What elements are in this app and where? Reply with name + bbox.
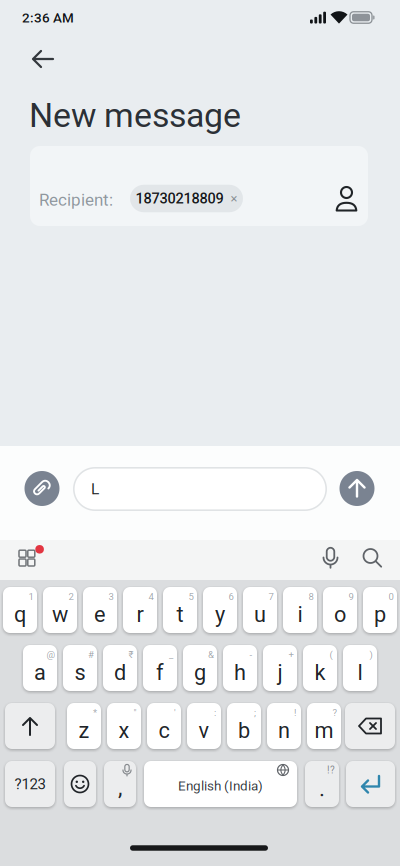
button[interactable]: w [43, 587, 77, 633]
button[interactable]: , [104, 761, 136, 807]
button[interactable]: a [23, 645, 57, 691]
button[interactable]: English (India) [144, 761, 297, 807]
staticText: 18730218809 [135, 190, 223, 207]
button[interactable]: r [123, 587, 157, 633]
staticText: q [14, 602, 26, 627]
button[interactable]: Shift [5, 703, 55, 749]
staticText: o [334, 602, 346, 627]
button[interactable]: t [163, 587, 197, 633]
button[interactable]: h [223, 645, 257, 691]
button[interactable]: l [343, 645, 377, 691]
staticText: c [158, 718, 169, 743]
staticText: & [208, 649, 214, 660]
staticText: 1 [28, 591, 33, 602]
staticText: . [319, 775, 325, 802]
staticText: ' [174, 707, 176, 718]
staticText: ( [329, 649, 332, 660]
staticText: y [215, 602, 225, 627]
button[interactable]: Remove recipient 18730218809 [130, 185, 243, 212]
button[interactable]: j [263, 645, 297, 691]
staticText: 6 [228, 591, 233, 602]
button[interactable]: m [307, 703, 341, 749]
button[interactable]: Back [23, 39, 63, 79]
button[interactable]: n [267, 703, 301, 749]
staticText: b [238, 718, 250, 743]
button[interactable]: q [3, 587, 37, 633]
staticText: L [91, 480, 99, 498]
staticText: 2 [68, 591, 73, 602]
staticText: x [118, 718, 129, 743]
staticText: * [93, 707, 97, 718]
staticText: 4 [148, 591, 153, 602]
button[interactable]: p [363, 587, 397, 633]
button[interactable]: v [187, 703, 221, 749]
staticText: i [297, 602, 302, 627]
staticText: New message [29, 95, 241, 135]
staticText: l [357, 660, 362, 685]
staticText: ; [254, 707, 256, 718]
staticText: d [114, 660, 126, 685]
staticText: u [254, 602, 266, 627]
staticText: 9 [348, 591, 353, 602]
staticText: Recipient: [39, 190, 113, 210]
button[interactable]: . [305, 761, 339, 807]
button[interactable]: Attach [24, 471, 59, 506]
button[interactable]: s [63, 645, 97, 691]
staticText: : [214, 707, 216, 718]
button[interactable]: i [283, 587, 317, 633]
staticText: t [176, 602, 183, 627]
staticText: e [94, 602, 106, 627]
staticText: h [234, 660, 246, 685]
button[interactable]: Enter [346, 761, 395, 807]
staticText: 5 [188, 591, 193, 602]
staticText: 3 [108, 591, 113, 602]
button[interactable]: Search [360, 545, 384, 569]
button[interactable]: Keyboard options [17, 544, 45, 570]
button[interactable]: c [147, 703, 181, 749]
button[interactable]: e [83, 587, 117, 633]
button[interactable]: f [143, 645, 177, 691]
staticText: !? [327, 764, 335, 776]
staticText: @ [46, 649, 55, 660]
staticText: + [288, 649, 293, 660]
staticText: j [277, 660, 282, 685]
staticText: - [249, 649, 252, 660]
staticText: m [314, 718, 333, 743]
button[interactable]: k [303, 645, 337, 691]
staticText: ! [294, 707, 296, 718]
staticText: ? [332, 707, 337, 718]
staticText: ₹ [128, 649, 133, 660]
button[interactable]: u [243, 587, 277, 633]
button[interactable]: o [323, 587, 357, 633]
staticText: f [156, 660, 164, 685]
staticText: ) [369, 649, 372, 660]
button[interactable]: y [203, 587, 237, 633]
staticText: n [278, 718, 290, 743]
staticText: 0 [388, 591, 393, 602]
button[interactable]: x [107, 703, 141, 749]
button[interactable]: b [227, 703, 261, 749]
staticText: p [374, 602, 386, 627]
staticText: 8 [308, 591, 313, 602]
staticText: g [194, 660, 206, 685]
staticText: 2:36 AM [22, 10, 74, 26]
staticText: 7 [268, 591, 273, 602]
staticText: z [78, 718, 89, 743]
staticText: , [118, 774, 122, 800]
button[interactable]: Choose contact [328, 181, 364, 217]
button[interactable]: Voice input [318, 545, 342, 569]
button[interactable]: Delete [345, 703, 395, 749]
staticText: × [230, 191, 237, 206]
staticText: _ [169, 649, 173, 660]
staticText: k [314, 660, 325, 685]
button[interactable]: ?123 [5, 761, 55, 807]
staticText: English (India) [178, 778, 263, 794]
button[interactable]: Send [339, 471, 374, 506]
button[interactable]: z [67, 703, 101, 749]
button[interactable]: g [183, 645, 217, 691]
staticText: # [88, 649, 94, 660]
button[interactable]: d [103, 645, 137, 691]
staticText: " [133, 707, 136, 718]
button[interactable]: Emoji [64, 761, 96, 807]
staticText: ?123 [14, 775, 45, 793]
